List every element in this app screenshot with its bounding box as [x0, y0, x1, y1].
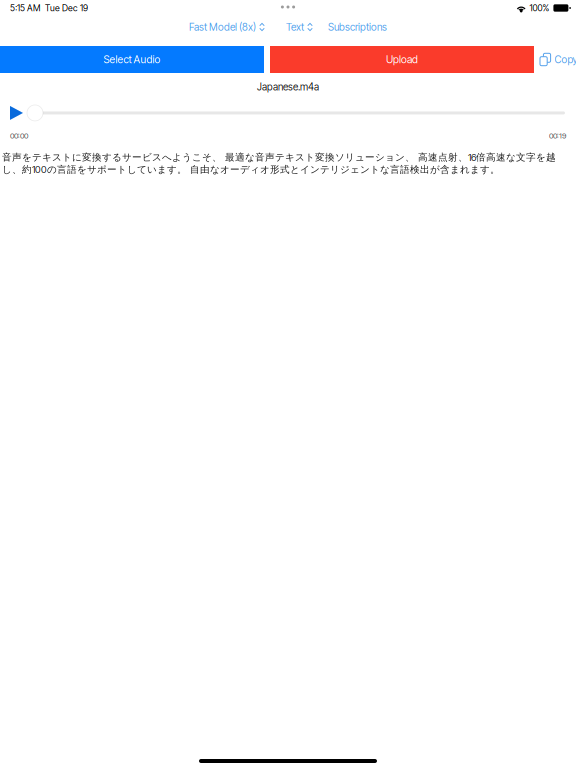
staticText: 5:15 AM — [10, 3, 40, 13]
staticText: Upload — [386, 53, 418, 66]
staticText: Select Audio — [103, 53, 160, 66]
staticText: 音声をテキストに変換するサービスへようこそ、 最適な音声テキスト変換ソリューショ… — [2, 151, 556, 175]
button[interactable]: Copy — [540, 46, 576, 73]
button[interactable]: Fast Model (8x) — [189, 21, 265, 33]
staticText: 00:19 — [549, 131, 566, 140]
staticText: Tue Dec 19 — [45, 3, 88, 13]
staticText: Fast Model (8x) — [189, 21, 256, 33]
staticText: 100% — [529, 3, 549, 13]
staticText: 00:00 — [10, 131, 28, 140]
staticText: Subscriptions — [328, 21, 387, 33]
button[interactable]: Upload — [270, 46, 534, 73]
button[interactable]: Play — [0, 106, 27, 120]
staticText: Copy — [555, 53, 576, 66]
staticText: Text — [286, 21, 304, 33]
staticText: Japanese.m4a — [257, 81, 319, 93]
button[interactable]: Select Audio — [0, 46, 264, 73]
button[interactable]: Text — [286, 21, 313, 33]
button[interactable]: Subscriptions — [328, 21, 387, 33]
